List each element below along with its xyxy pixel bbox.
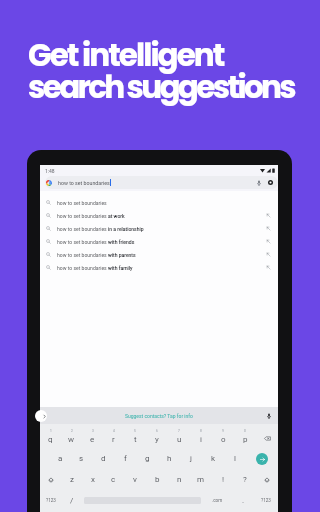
button[interactable]: ?123: [254, 490, 278, 511]
staticText: w: [68, 435, 75, 444]
button[interactable]: 8: [190, 427, 212, 448]
staticText: e: [90, 435, 95, 444]
staticText: m: [197, 475, 205, 484]
button[interactable]: how to set boundaries with friends: [40, 235, 278, 248]
button[interactable]: s: [71, 448, 92, 469]
button[interactable]: Shift: [40, 469, 61, 490]
button[interactable]: 4: [103, 427, 124, 448]
button[interactable]: Expand: [35, 410, 47, 422]
button[interactable]: j: [180, 448, 202, 469]
staticText: .com: [212, 498, 223, 503]
button[interactable]: x: [82, 469, 103, 490]
button[interactable]: .com: [202, 490, 232, 511]
staticText: o: [221, 435, 226, 444]
button[interactable]: l: [224, 448, 246, 469]
button[interactable]: how to set boundaries in a relationship: [40, 222, 278, 235]
staticText: how to set boundaries with parents: [57, 252, 136, 258]
staticText: how to set boundaries: [57, 200, 107, 206]
staticText: ?123: [46, 498, 56, 503]
button[interactable]: 9: [212, 427, 234, 448]
staticText: k: [211, 454, 216, 463]
button[interactable]: how to set boundaries: [45, 176, 278, 189]
staticText: 9: [222, 429, 224, 433]
staticText: b: [155, 475, 160, 484]
button[interactable]: m: [190, 469, 212, 490]
staticText: s: [79, 454, 84, 463]
button[interactable]: 7: [168, 427, 190, 448]
staticText: 4: [113, 429, 115, 433]
staticText: how to set boundaries: [58, 180, 110, 186]
staticText: 5: [134, 429, 136, 433]
staticText: ?123: [261, 498, 271, 503]
button[interactable]: g: [136, 448, 158, 469]
staticText: x: [91, 475, 95, 484]
button[interactable]: ?: [234, 469, 256, 490]
staticText: how to set boundaries at work: [57, 213, 125, 219]
button[interactable]: b: [146, 469, 168, 490]
staticText: c: [111, 475, 116, 484]
staticText: /: [70, 496, 74, 505]
staticText: j: [190, 454, 192, 463]
button[interactable]: Suggest contacts? Tap for info: [125, 413, 193, 419]
staticText: v: [133, 475, 137, 484]
staticText: 3: [92, 429, 94, 433]
button[interactable]: n: [168, 469, 190, 490]
button[interactable]: !: [212, 469, 234, 490]
button[interactable]: Search: [256, 453, 268, 465]
button[interactable]: Search by voice: [254, 178, 263, 187]
staticText: 7: [178, 429, 180, 433]
other: Insert suggestion: [266, 252, 271, 257]
staticText: .: [242, 496, 245, 505]
button[interactable]: d: [92, 448, 114, 469]
button[interactable]: c: [103, 469, 124, 490]
button[interactable]: how to set boundaries: [40, 196, 278, 209]
staticText: 1: [50, 429, 52, 433]
button[interactable]: how to set boundaries with family: [40, 261, 278, 274]
staticText: z: [70, 475, 74, 484]
button[interactable]: h: [158, 448, 180, 469]
other: Insert suggestion: [266, 239, 271, 244]
button[interactable]: 2: [61, 427, 82, 448]
button[interactable]: 5: [124, 427, 146, 448]
staticText: how to set boundaries in a relationship: [57, 226, 144, 232]
button[interactable]: 6: [146, 427, 168, 448]
staticText: d: [101, 454, 106, 463]
staticText: 8: [200, 429, 202, 433]
button[interactable]: 3: [82, 427, 103, 448]
staticText: !: [222, 475, 225, 484]
other: Insert suggestion: [266, 265, 271, 270]
button[interactable]: 0: [234, 427, 256, 448]
button[interactable]: how to set boundaries at work: [40, 209, 278, 222]
staticText: t: [134, 435, 137, 444]
staticText: 1:48: [45, 168, 55, 174]
other: Insert suggestion: [266, 226, 271, 231]
staticText: a: [58, 454, 63, 463]
button[interactable]: v: [124, 469, 146, 490]
button[interactable]: Shift: [256, 469, 278, 490]
staticText: y: [155, 435, 159, 444]
button[interactable]: 1: [40, 427, 61, 448]
staticText: 2: [71, 429, 73, 433]
button[interactable]: Voice input: [264, 411, 274, 421]
staticText: q: [48, 435, 53, 444]
button[interactable]: /: [61, 490, 83, 511]
button[interactable]: z: [61, 469, 82, 490]
button[interactable]: how to set boundaries with parents: [40, 248, 278, 261]
button[interactable]: k: [202, 448, 224, 469]
staticText: n: [177, 475, 182, 484]
button[interactable]: ?123: [40, 490, 61, 511]
button[interactable]: f: [114, 448, 136, 469]
staticText: i: [200, 435, 202, 444]
staticText: p: [243, 435, 248, 444]
button[interactable]: Google account: [266, 178, 275, 187]
staticText: r: [112, 435, 115, 444]
staticText: search suggestions: [28, 65, 294, 108]
staticText: g: [145, 454, 150, 463]
staticText: u: [177, 435, 182, 444]
button[interactable]: Backspace: [256, 427, 278, 448]
staticText: how to set boundaries with friends: [57, 239, 135, 245]
staticText: 0: [244, 429, 246, 433]
button[interactable]: a: [50, 448, 71, 469]
